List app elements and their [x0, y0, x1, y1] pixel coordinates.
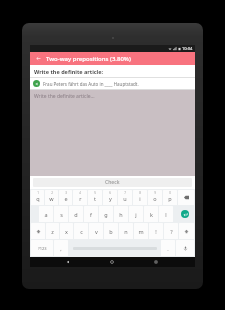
staticText: Write the definite article: — [34, 68, 104, 75]
button[interactable]: Home — [107, 257, 117, 267]
button[interactable]: Space — [69, 240, 160, 256]
button[interactable]: Voice input — [176, 240, 194, 256]
staticText: 7 — [124, 191, 126, 195]
button[interactable]: Enter — [181, 210, 189, 218]
staticText: r — [79, 195, 82, 202]
staticText: Check — [105, 179, 120, 186]
button[interactable]: d — [69, 206, 83, 222]
button[interactable]: Back — [34, 54, 43, 63]
button[interactable]: k — [144, 206, 158, 222]
staticText: x — [65, 228, 68, 235]
button[interactable]: Recents — [151, 257, 161, 267]
button[interactable]: Check — [33, 178, 192, 187]
button[interactable]: c — [74, 223, 88, 239]
button[interactable]: ? — [164, 223, 178, 239]
staticText: z — [51, 228, 54, 235]
staticText: ? — [170, 228, 173, 235]
button[interactable]: l — [159, 206, 173, 222]
staticText: d — [74, 211, 78, 218]
staticText: l — [165, 211, 167, 218]
staticText: 2 — [51, 191, 53, 195]
staticText: e — [64, 195, 68, 202]
button[interactable]: Back — [63, 257, 73, 267]
staticText: . — [167, 245, 169, 252]
staticText: ?123 — [38, 246, 47, 251]
button[interactable]: 5 — [88, 190, 102, 205]
button[interactable]: 0 — [163, 190, 177, 205]
staticText: q — [36, 195, 40, 202]
staticText: j — [135, 211, 137, 218]
button[interactable]: j — [129, 206, 143, 222]
staticText: Frau Peters fährt das Auto in ____ Haupt… — [43, 81, 139, 87]
button[interactable]: s — [54, 206, 68, 222]
button[interactable]: h — [114, 206, 128, 222]
staticText: Two-way prepositions (3.80%) — [46, 55, 131, 63]
staticText: k — [150, 211, 153, 218]
button[interactable]: ! — [149, 223, 163, 239]
button[interactable]: 3 — [59, 190, 72, 205]
button[interactable]: 2 — [45, 190, 58, 205]
staticText: c — [80, 228, 83, 235]
staticText: 5 — [94, 191, 96, 195]
staticText: 8 — [139, 191, 141, 195]
staticText: u — [123, 195, 127, 202]
staticText: i — [139, 195, 141, 202]
staticText: ! — [155, 228, 157, 235]
staticText: , — [60, 245, 62, 252]
staticText: 1 — [37, 191, 39, 195]
staticText: h — [119, 211, 123, 218]
staticText: 6 — [109, 191, 111, 195]
staticText: 9 — [154, 191, 156, 195]
button[interactable]: v — [89, 223, 103, 239]
staticText: w — [49, 195, 54, 202]
staticText: o — [153, 195, 157, 202]
button[interactable]: 6 — [103, 190, 117, 205]
staticText: m — [138, 228, 144, 235]
button[interactable]: 4 — [73, 190, 87, 205]
staticText: 10:04 — [182, 46, 193, 51]
staticText: b — [109, 228, 113, 235]
staticText: f — [90, 211, 92, 218]
staticText: v — [95, 228, 98, 235]
button[interactable]: a — [39, 206, 53, 222]
button[interactable]: Shift — [179, 223, 194, 239]
button[interactable]: z — [46, 223, 59, 239]
button[interactable]: 7 — [118, 190, 132, 205]
button[interactable]: Symbols — [31, 240, 53, 256]
staticText: g — [104, 211, 108, 218]
staticText: Write the definite article... — [34, 93, 95, 100]
button[interactable]: b — [104, 223, 118, 239]
staticText: p — [168, 195, 172, 202]
other: Play audio — [33, 80, 40, 87]
button[interactable]: 1 — [31, 190, 44, 205]
staticText: 3 — [65, 191, 67, 195]
button[interactable]: , — [54, 240, 68, 256]
staticText: s — [60, 211, 63, 218]
button[interactable]: 8 — [133, 190, 147, 205]
button[interactable]: f — [84, 206, 98, 222]
staticText: t — [94, 195, 96, 202]
button[interactable]: Shift — [31, 223, 45, 239]
button[interactable]: n — [119, 223, 133, 239]
button[interactable]: Play audio — [30, 78, 195, 89]
button[interactable]: g — [99, 206, 113, 222]
staticText: y — [109, 195, 112, 202]
button[interactable]: 9 — [148, 190, 162, 205]
staticText: n — [124, 228, 128, 235]
button[interactable]: Backspace — [178, 190, 194, 205]
button[interactable]: x — [60, 223, 73, 239]
staticText: a — [44, 211, 48, 218]
staticText: 0 — [169, 191, 171, 195]
button[interactable]: m — [134, 223, 148, 239]
staticText: 4 — [79, 191, 81, 195]
